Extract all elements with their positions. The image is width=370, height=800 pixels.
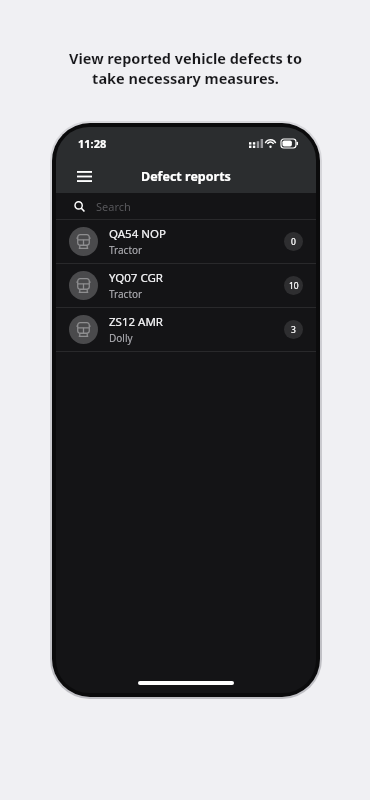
staticText: QA54 NOP [109,226,166,242]
staticText: Search [96,199,131,214]
staticText: View reported vehicle defects to [69,48,302,68]
staticText: Defect reports [141,168,231,185]
staticText: 0 [291,236,296,248]
staticText: Dolly [109,331,133,345]
staticText: Tractor [109,287,143,301]
staticText: 10 [289,280,299,292]
button[interactable]: ZS12 AMR [56,308,316,351]
staticText: ZS12 AMR [109,314,163,330]
staticText: 11:28 [78,136,107,151]
staticText: Tractor [109,243,143,257]
staticText: YQ07 CGR [109,270,163,286]
staticText: take necessary measures. [92,68,279,88]
button[interactable]: QA54 NOP [56,220,316,263]
button[interactable]: YQ07 CGR [56,264,316,307]
staticText: 3 [291,324,296,336]
button[interactable]: Menu [68,160,100,192]
button[interactable]: Search [56,193,316,219]
